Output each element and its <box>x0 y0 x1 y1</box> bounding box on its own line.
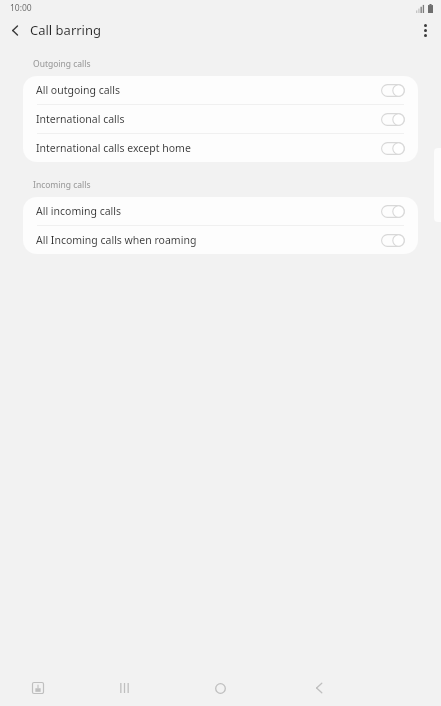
button[interactable]: Recent apps <box>110 674 138 702</box>
button[interactable]: Screenshot <box>24 674 52 702</box>
staticText: International calls <box>36 112 380 126</box>
staticText: International calls except home <box>36 141 380 155</box>
button[interactable]: More options <box>409 16 441 44</box>
staticText: All outgoing calls <box>36 83 380 97</box>
staticText: Call barring <box>30 21 102 39</box>
button[interactable]: Toggle <box>380 231 406 249</box>
staticText: Incoming calls <box>33 179 91 191</box>
button[interactable]: International calls <box>23 105 418 133</box>
button[interactable]: Toggle <box>380 81 406 99</box>
button[interactable]: Back <box>0 16 30 44</box>
button[interactable]: Home <box>206 674 234 702</box>
button[interactable]: All Incoming calls when roaming <box>23 226 418 254</box>
button[interactable]: Toggle <box>380 202 406 220</box>
staticText: Outgoing calls <box>33 58 91 70</box>
button[interactable]: Toggle <box>380 139 406 157</box>
button[interactable]: All outgoing calls <box>23 76 418 104</box>
staticText: All incoming calls <box>36 204 380 218</box>
button[interactable]: Back <box>305 674 333 702</box>
button[interactable]: International calls except home <box>23 134 418 162</box>
staticText: All Incoming calls when roaming <box>36 233 380 247</box>
button[interactable]: All incoming calls <box>23 197 418 225</box>
staticText: 10:00 <box>10 2 32 14</box>
button[interactable]: Toggle <box>380 110 406 128</box>
